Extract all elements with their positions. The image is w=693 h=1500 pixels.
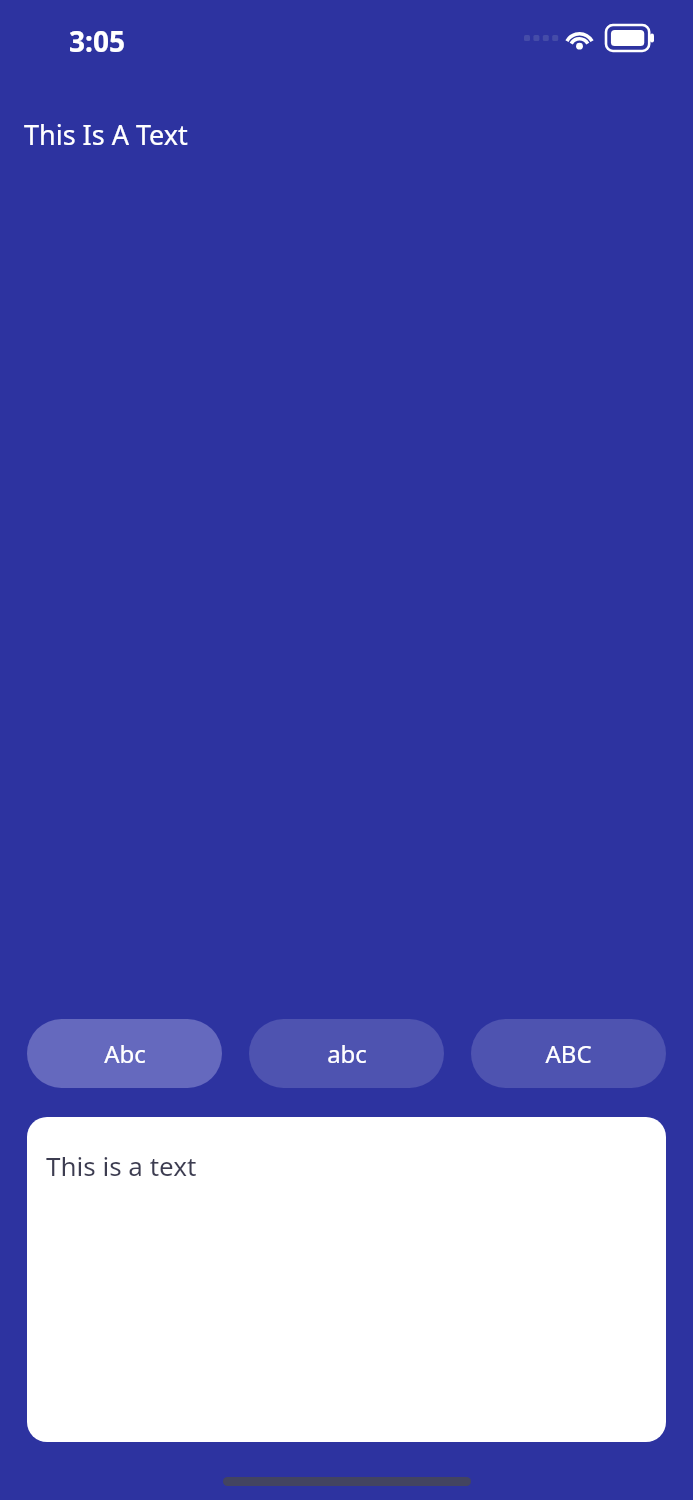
staticText: This Is A Text	[24, 116, 188, 153]
staticText: 3:05	[69, 22, 125, 60]
button[interactable]: abc	[249, 1019, 444, 1088]
staticText: Abc	[104, 1037, 146, 1070]
button[interactable]: This is a text	[27, 1117, 666, 1442]
other: Battery	[606, 25, 654, 51]
button[interactable]: Abc	[27, 1019, 222, 1088]
button[interactable]: ABC	[471, 1019, 666, 1088]
other: Wi-Fi	[565, 26, 594, 50]
staticText: ABC	[545, 1037, 592, 1070]
other: Signal	[520, 30, 558, 46]
staticText: This is a text	[46, 1148, 197, 1183]
staticText: abc	[327, 1037, 367, 1070]
